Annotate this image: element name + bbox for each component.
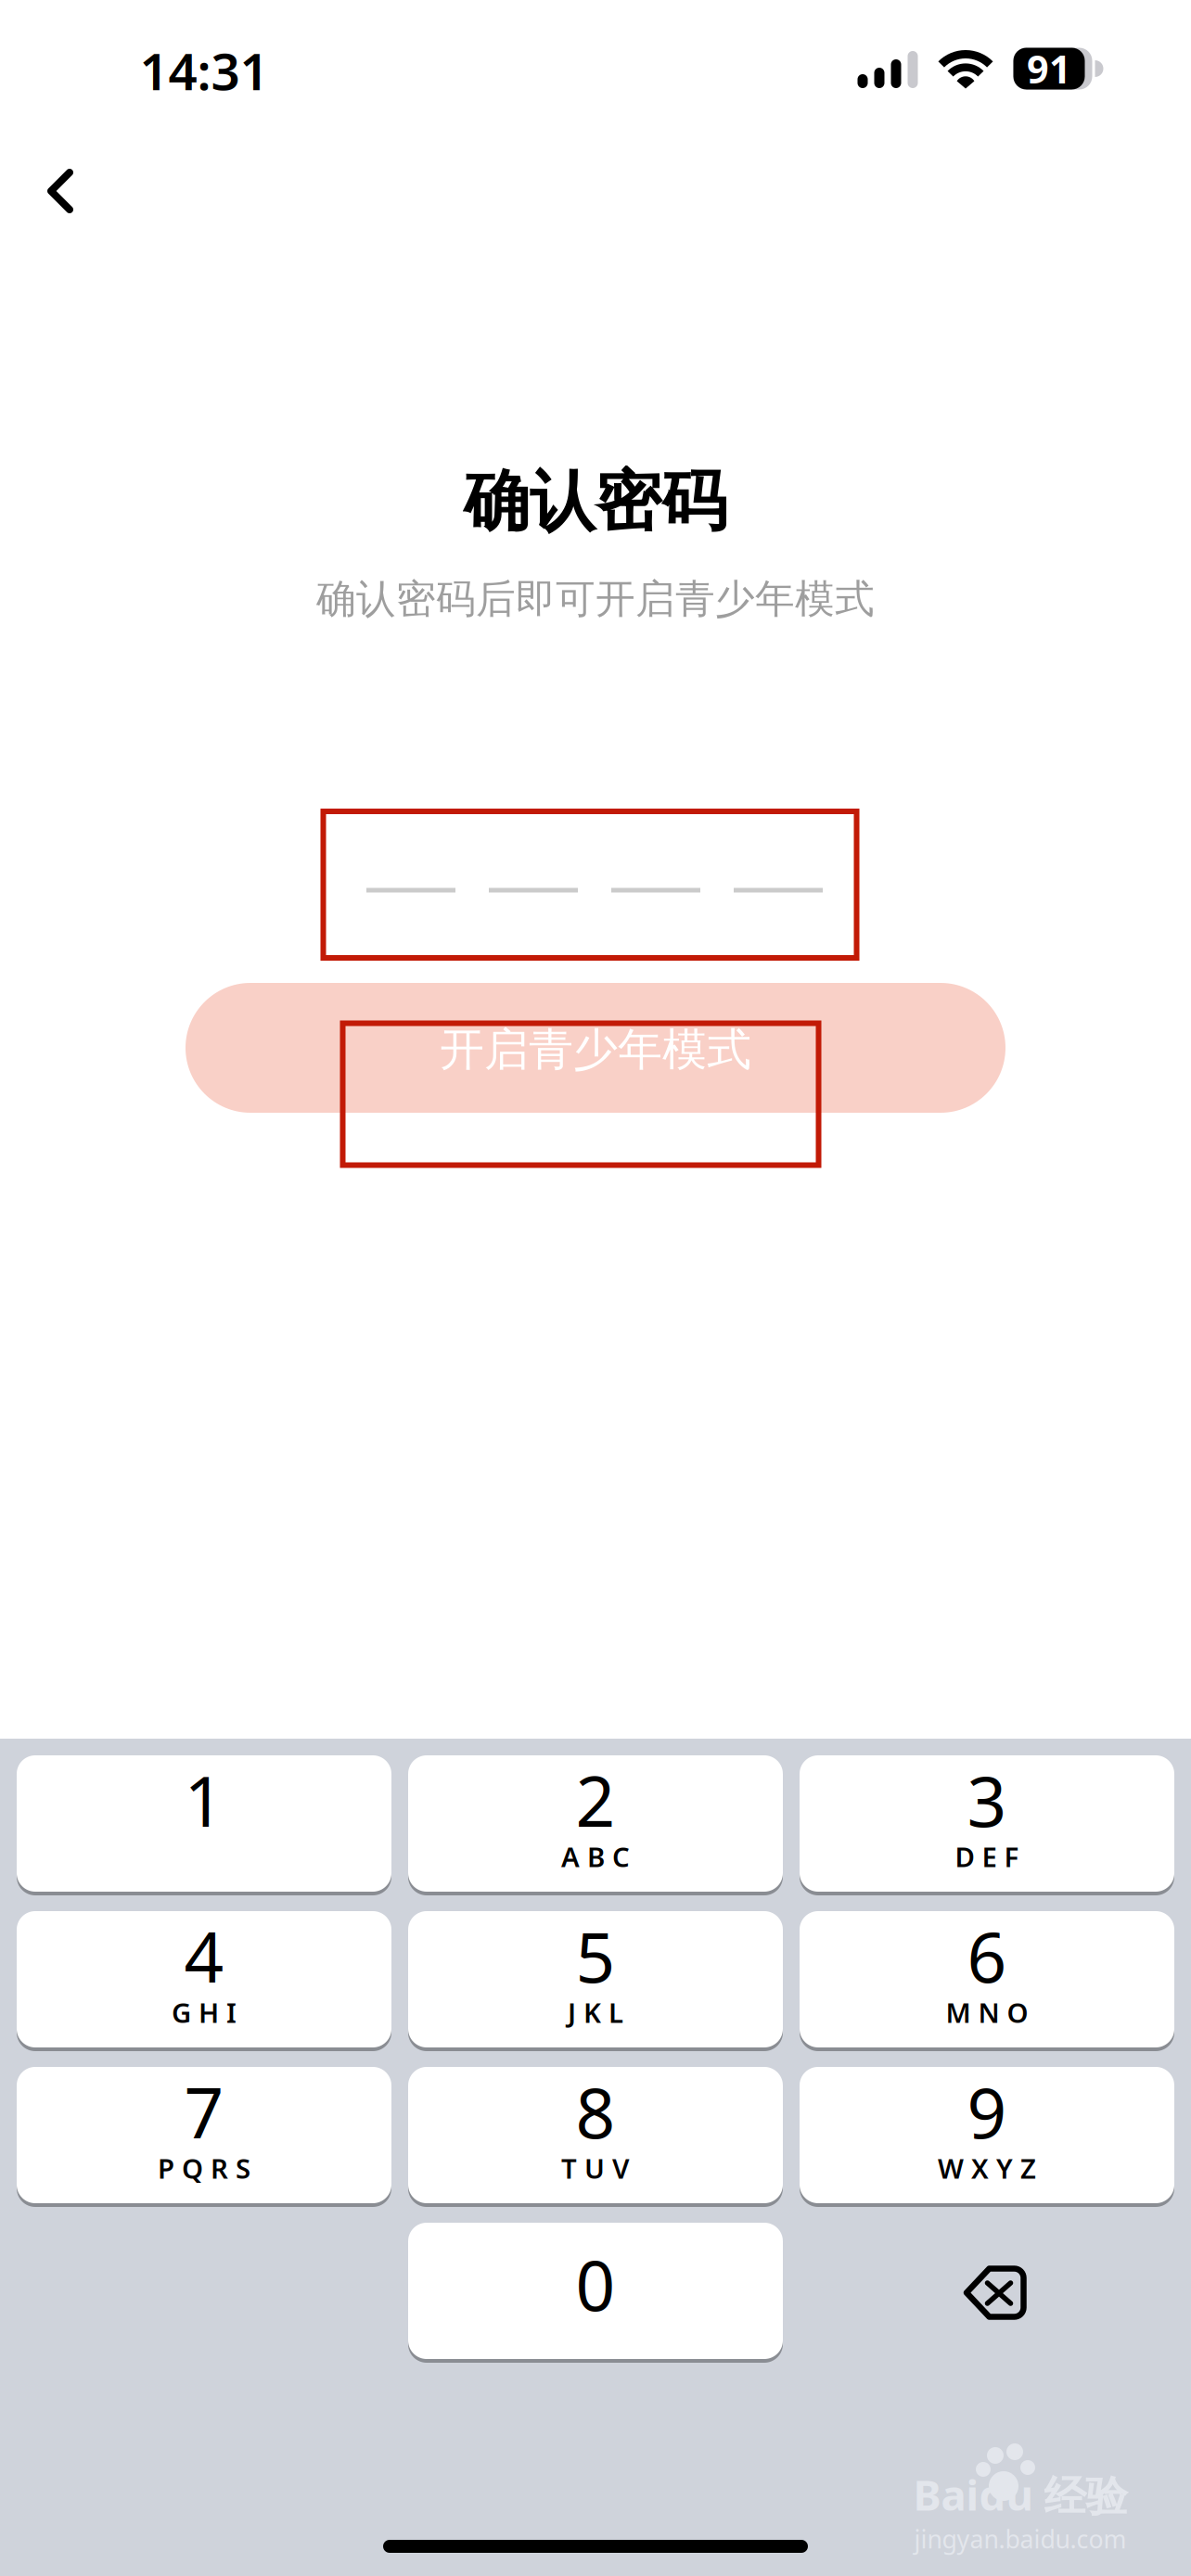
staticText: 1 <box>184 1754 224 1846</box>
staticText: 3 <box>967 1754 1007 1846</box>
staticText: P Q R S <box>158 2150 250 2186</box>
button[interactable]: 6 <box>800 1911 1174 2051</box>
button[interactable]: Delete <box>800 2223 1174 2363</box>
staticText: A B C <box>561 1838 630 1875</box>
staticText: Baidu 经验 <box>913 2466 1127 2522</box>
staticText: T U V <box>561 2150 630 2186</box>
button[interactable]: Passcode field <box>323 811 857 958</box>
staticText: jingyan.baidu.com <box>914 2522 1127 2555</box>
staticText: 91 <box>1027 43 1071 94</box>
button[interactable]: 5 <box>408 1911 783 2051</box>
button[interactable]: 0 <box>408 2223 783 2363</box>
staticText: 5 <box>576 1910 615 2002</box>
staticText: 2 <box>576 1754 615 1846</box>
staticText: G H I <box>172 1994 237 2030</box>
staticText: 14:31 <box>140 37 269 104</box>
button[interactable]: 8 <box>408 2067 783 2207</box>
button[interactable]: 4 <box>17 1911 391 2051</box>
staticText: 6 <box>967 1910 1007 2002</box>
staticText: 8 <box>576 2065 615 2157</box>
staticText: 9 <box>967 2065 1007 2157</box>
staticText: 4 <box>184 1910 224 2002</box>
button[interactable]: Back <box>9 140 111 242</box>
staticText: 确认密码后即可开启青少年模式 <box>316 575 875 623</box>
button[interactable]: 9 <box>800 2067 1174 2207</box>
button[interactable]: 1 <box>17 1755 391 1895</box>
staticText: J K L <box>568 1994 623 2030</box>
button[interactable]: 7 <box>17 2067 391 2207</box>
staticText: D E F <box>955 1838 1019 1875</box>
button[interactable]: 3 <box>800 1755 1174 1895</box>
staticText: M N O <box>946 1994 1028 2030</box>
staticText: 7 <box>184 2065 224 2157</box>
button[interactable]: 开启青少年模式 <box>186 983 1005 1113</box>
staticText: W X Y Z <box>938 2150 1036 2186</box>
staticText: 0 <box>576 2238 615 2330</box>
staticText: 开启青少年模式 <box>440 1022 751 1077</box>
button[interactable]: 2 <box>408 1755 783 1895</box>
staticText: 确认密码 <box>464 461 727 542</box>
